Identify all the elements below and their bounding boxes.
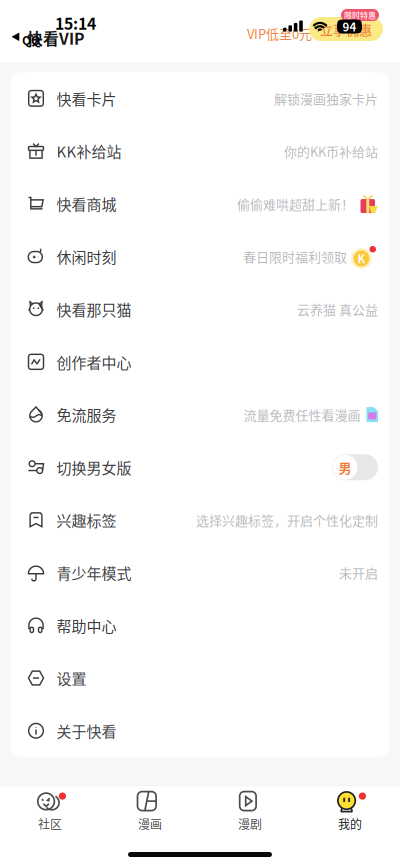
staticText: 设置 — [56, 667, 86, 689]
staticText: 漫画 — [138, 815, 162, 832]
staticText: 选择兴趣标签，开启个性化定制 — [196, 510, 378, 529]
button[interactable]: 社区 — [0, 787, 100, 837]
staticText: 94 — [342, 18, 356, 35]
staticText: 切换男女版 — [56, 456, 131, 478]
staticText: 云养猫 真公益 — [297, 300, 378, 318]
staticText: 你的KK币补给站 — [284, 142, 378, 160]
button[interactable]: 帮助中心 — [10, 599, 389, 652]
staticText: 解锁漫画独家卡片 — [274, 89, 378, 108]
staticText: QQ — [22, 31, 40, 48]
staticText: 社区 — [38, 815, 62, 832]
staticText: 立享优惠 — [320, 20, 372, 38]
button[interactable]: 青少年模式 — [10, 546, 389, 599]
staticText: 男 — [338, 458, 351, 477]
staticText: K — [357, 250, 365, 266]
staticText: VIP低至0元 — [247, 24, 312, 43]
staticText: 流量免费任性看漫画 — [243, 405, 360, 424]
button[interactable]: 创作者中心 — [10, 335, 389, 388]
button[interactable]: 快看商城 — [10, 177, 389, 230]
button[interactable]: 休闲时刻 — [10, 230, 389, 283]
button[interactable]: 快看卡片 — [10, 72, 389, 125]
button[interactable]: 我的 — [300, 787, 400, 837]
button[interactable]: 关于快看 — [10, 704, 389, 757]
staticText: 漫剧 — [238, 815, 262, 832]
staticText: 未开启 — [339, 563, 378, 582]
staticText: 春日限时福利领取 — [243, 247, 347, 266]
staticText: 偷偷难哄超甜上新！ — [237, 194, 354, 213]
staticText: KK补给站 — [56, 140, 121, 162]
button[interactable]: 漫画 — [100, 787, 200, 837]
staticText: 休闲时刻 — [56, 246, 116, 267]
staticText: 15:14 — [55, 11, 96, 34]
staticText: 创作者中心 — [56, 351, 131, 373]
button[interactable]: 男 — [332, 454, 378, 480]
staticText: 免流服务 — [56, 404, 116, 425]
staticText: 关于快看 — [56, 720, 116, 742]
staticText: 兴趣标签 — [56, 509, 116, 531]
staticText: 快看卡片 — [56, 87, 116, 109]
button[interactable]: 立享优惠 — [309, 17, 383, 41]
button[interactable]: 漫剧 — [200, 787, 300, 837]
button[interactable]: 快看VIP — [27, 26, 85, 49]
button[interactable]: VIP低至0元 — [247, 24, 312, 43]
staticText: 快看那只猫 — [56, 298, 131, 320]
staticText: 限时特惠 — [344, 9, 376, 21]
button[interactable]: 兴趣标签 — [10, 494, 389, 546]
staticText: 我的 — [338, 815, 362, 832]
button[interactable]: 快看那只猫 — [10, 283, 389, 335]
button[interactable]: 设置 — [10, 652, 389, 704]
button[interactable]: KK补给站 — [10, 125, 389, 177]
staticText: 快看商城 — [56, 193, 116, 215]
staticText: 青少年模式 — [56, 562, 131, 583]
staticText: 帮助中心 — [56, 614, 116, 636]
button[interactable]: 切换男女版 — [10, 441, 389, 494]
button[interactable]: 免流服务 — [10, 388, 389, 441]
staticText: 快看VIP — [27, 26, 85, 49]
